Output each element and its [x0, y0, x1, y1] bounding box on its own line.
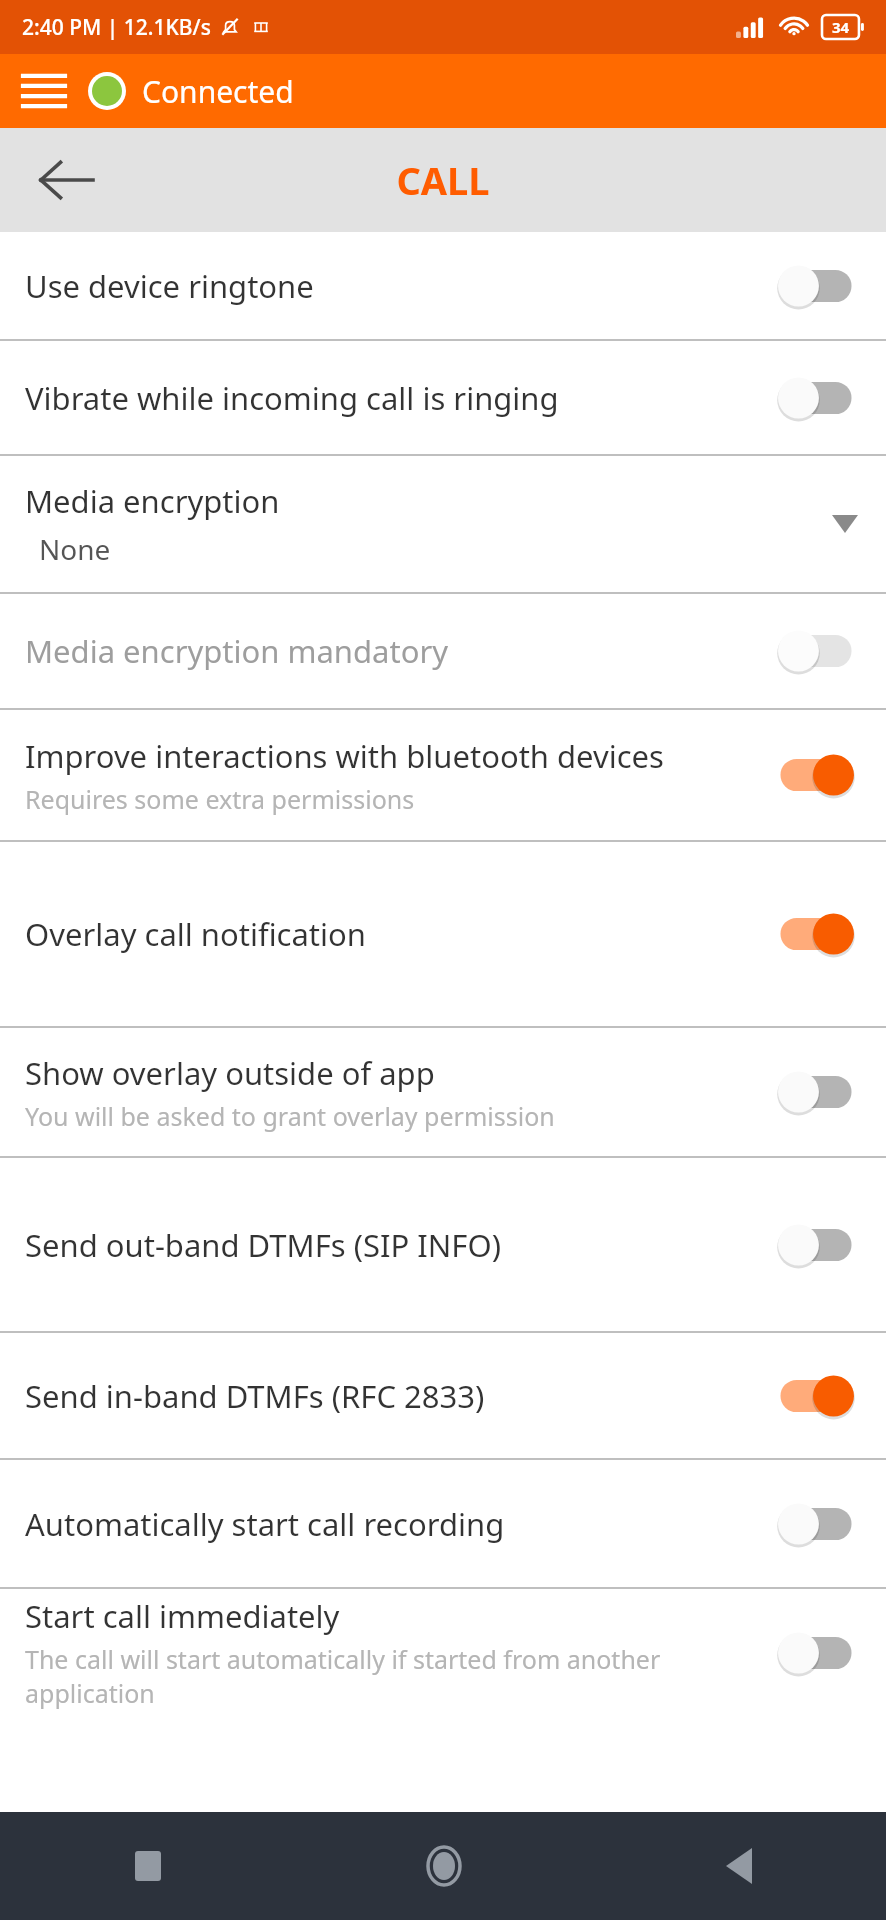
staticText: Start call immediately [25, 1595, 340, 1637]
button[interactable]: Show overlay outside of app [0, 1028, 886, 1156]
button[interactable]: Start call immediately [0, 1589, 886, 1716]
staticText: Send out-band DTMFs (SIP INFO) [25, 1224, 501, 1266]
staticText: The call will start automatically if sta… [25, 1642, 754, 1710]
staticText: Media encryption [25, 480, 280, 522]
staticText: Show overlay outside of app [25, 1052, 435, 1094]
staticText: Vibrate while incoming call is ringing [25, 377, 559, 419]
button[interactable]: Media encryption mandatory [0, 594, 886, 708]
button[interactable]: Home [296, 1812, 591, 1920]
staticText: Automatically start call recording [25, 1503, 505, 1545]
staticText: Overlay call notification [25, 913, 366, 955]
button[interactable]: Recent apps [0, 1812, 296, 1920]
staticText: Improve interactions with bluetooth devi… [25, 735, 664, 777]
button[interactable]: Toggle [768, 903, 864, 965]
button[interactable]: Toggle [768, 620, 864, 682]
button[interactable]: Toggle [768, 1493, 864, 1555]
button[interactable]: Send out-band DTMFs (SIP INFO) [0, 1158, 886, 1331]
button[interactable]: Toggle [768, 1214, 864, 1276]
button[interactable]: Vibrate while incoming call is ringing [0, 341, 886, 454]
button[interactable]: Overlay call notification [0, 842, 886, 1026]
staticText: 2:40 PM | 12.1KB/s [22, 13, 211, 42]
staticText: 34 [832, 17, 850, 37]
button[interactable]: Use device ringtone [0, 232, 886, 339]
staticText: Requires some extra permissions [25, 782, 415, 816]
button[interactable]: Toggle [768, 1061, 864, 1123]
staticText: CALL [396, 154, 490, 206]
staticText: None [39, 530, 111, 568]
button[interactable]: Open navigation menu [0, 54, 88, 128]
button[interactable]: Toggle [768, 744, 864, 806]
button[interactable]: Media encryption [0, 456, 886, 592]
staticText: Media encryption mandatory [25, 630, 449, 672]
staticText: Use device ringtone [25, 265, 314, 307]
button[interactable]: Toggle [768, 367, 864, 429]
button[interactable]: Toggle [768, 1622, 864, 1684]
button[interactable]: Back [591, 1812, 886, 1920]
button[interactable]: Improve interactions with bluetooth devi… [0, 710, 886, 840]
staticText: Send in-band DTMFs (RFC 2833) [25, 1375, 485, 1417]
button[interactable]: Toggle [768, 1365, 864, 1427]
staticText: You will be asked to grant overlay permi… [25, 1099, 555, 1133]
button[interactable]: Send in-band DTMFs (RFC 2833) [0, 1333, 886, 1458]
button[interactable]: Back [0, 128, 130, 232]
button[interactable]: Toggle [768, 255, 864, 317]
button[interactable]: Automatically start call recording [0, 1460, 886, 1587]
staticText: Connected [142, 71, 294, 112]
